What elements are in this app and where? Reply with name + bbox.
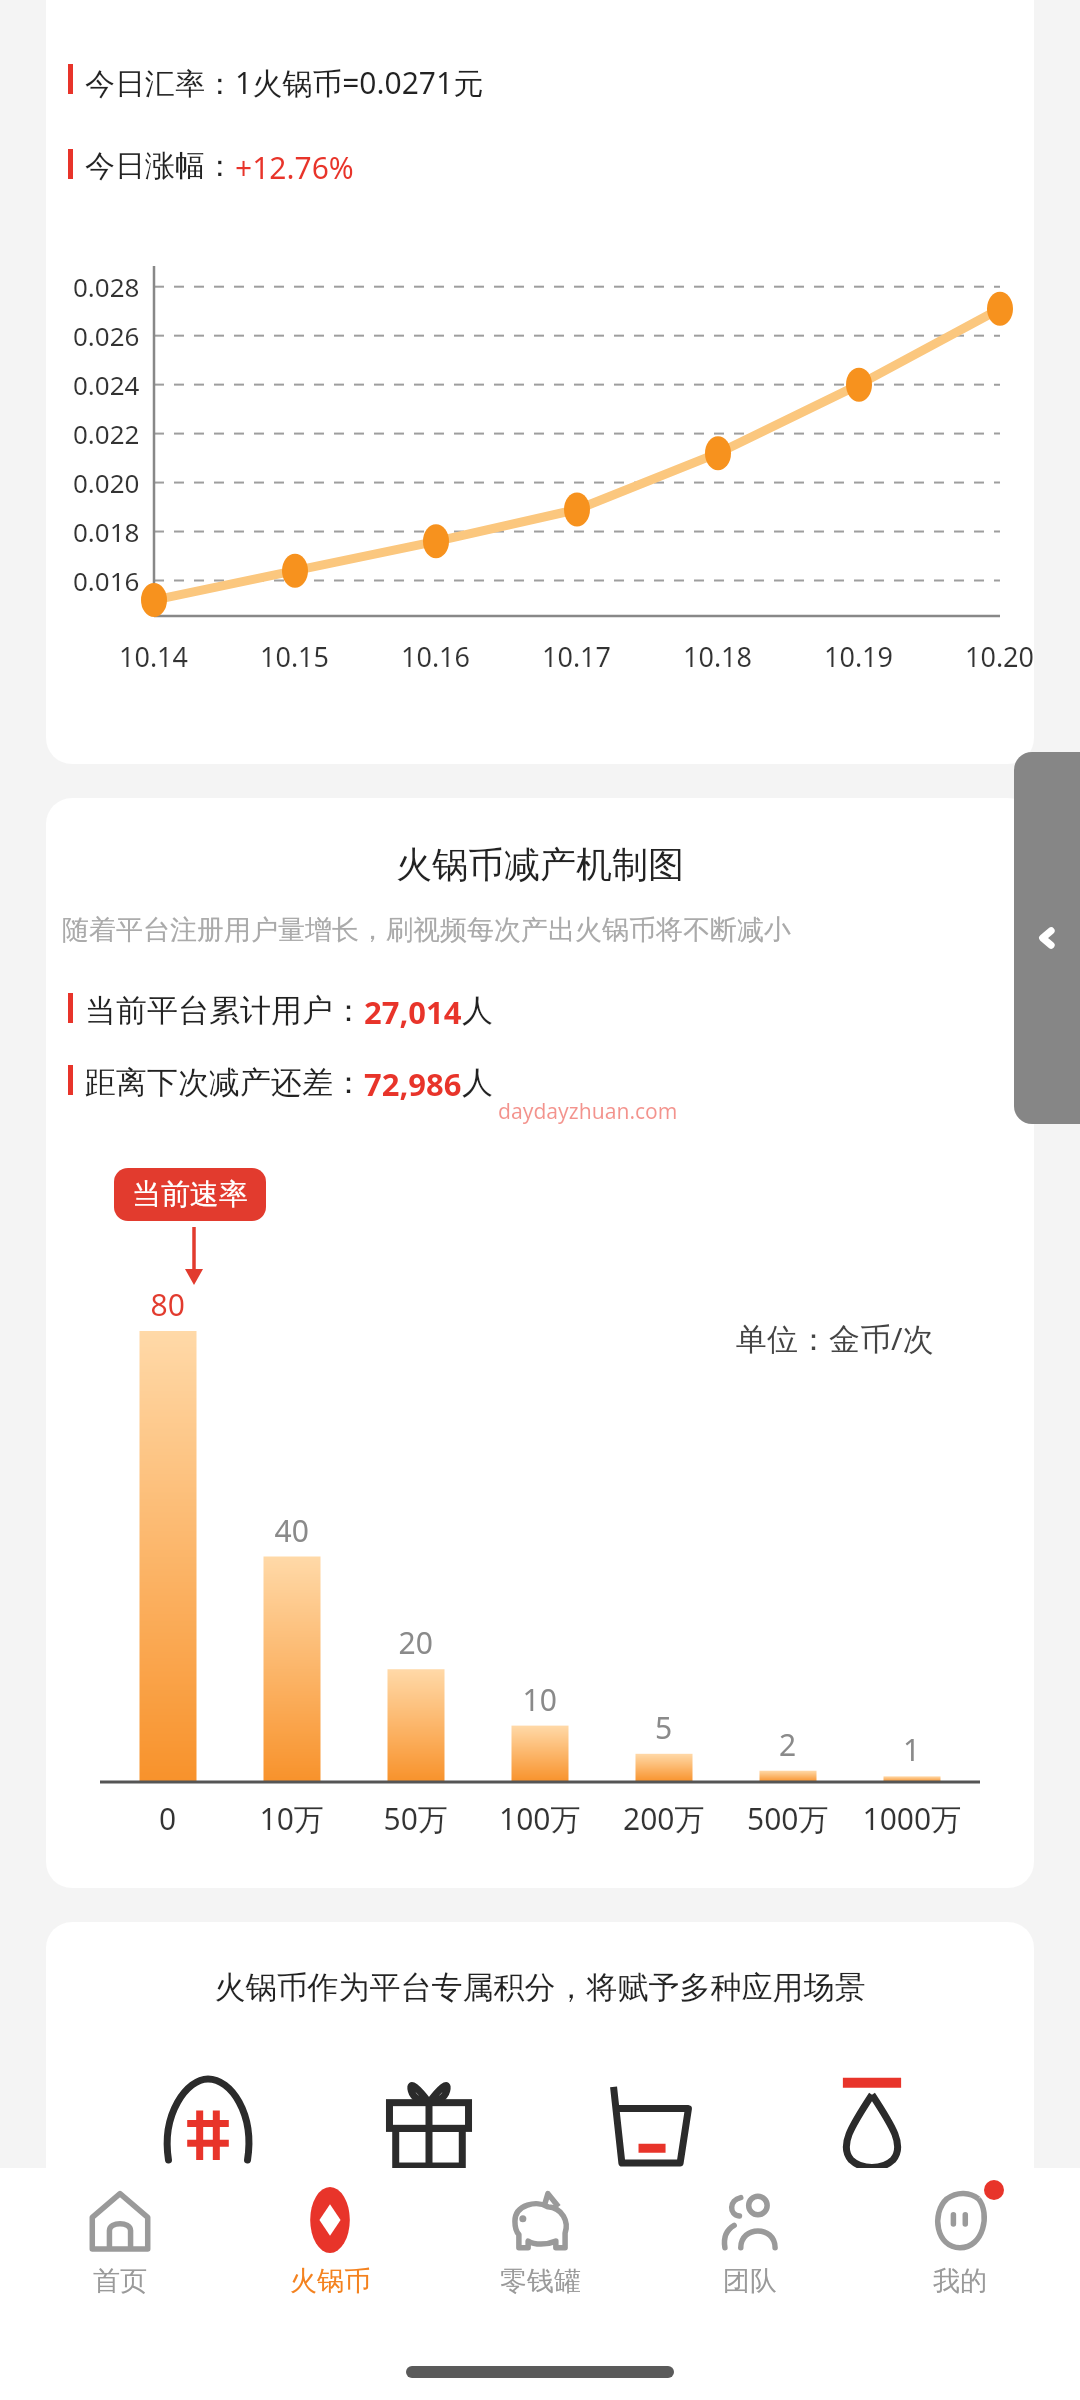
staticText: 火锅币作为平台专属积分，将赋予多种应用场景 <box>46 1968 1034 2007</box>
staticText: 零钱罐 <box>500 2264 581 2298</box>
staticText: daydayzhuan.com <box>498 1097 678 1126</box>
staticText: +12.76% <box>235 147 354 188</box>
button[interactable]: 我的 <box>870 2168 1050 2298</box>
staticText: 72,986 <box>364 1063 462 1105</box>
staticText: 距离下次减产还差： <box>85 1063 364 1102</box>
staticText: 我的 <box>933 2264 987 2298</box>
button[interactable]: 火锅币 <box>240 2168 420 2298</box>
button[interactable]: Shopping <box>591 2069 711 2168</box>
staticText: 随着平台注册用户量增长，刷视频每次产出火锅币将不断减小 <box>62 913 791 947</box>
button[interactable]: Lottery <box>812 2069 932 2168</box>
button[interactable]: Gift <box>369 2069 489 2168</box>
staticText: 团队 <box>723 2264 777 2298</box>
staticText: 27,014 <box>364 991 462 1033</box>
button[interactable]: Red packet <box>148 2069 268 2168</box>
button[interactable]: 首页 <box>30 2168 210 2298</box>
staticText: 今日涨幅： <box>85 147 235 185</box>
button[interactable]: Collapse panel <box>1014 752 1080 1124</box>
button[interactable]: 零钱罐 <box>450 2168 630 2298</box>
button[interactable]: 当前速率 <box>114 1168 266 1221</box>
staticText: 当前平台累计用户： <box>85 991 364 1030</box>
staticText: 火锅币减产机制图 <box>46 842 1034 887</box>
staticText: 火锅币 <box>290 2264 371 2298</box>
button[interactable]: 团队 <box>660 2168 840 2298</box>
staticText: 人 <box>462 991 493 1030</box>
staticText: 当前速率 <box>132 1176 248 1213</box>
staticText: 首页 <box>93 2264 147 2298</box>
staticText: 人 <box>462 1063 493 1102</box>
staticText: 今日汇率：1火锅币=0.0271元 <box>85 62 484 103</box>
